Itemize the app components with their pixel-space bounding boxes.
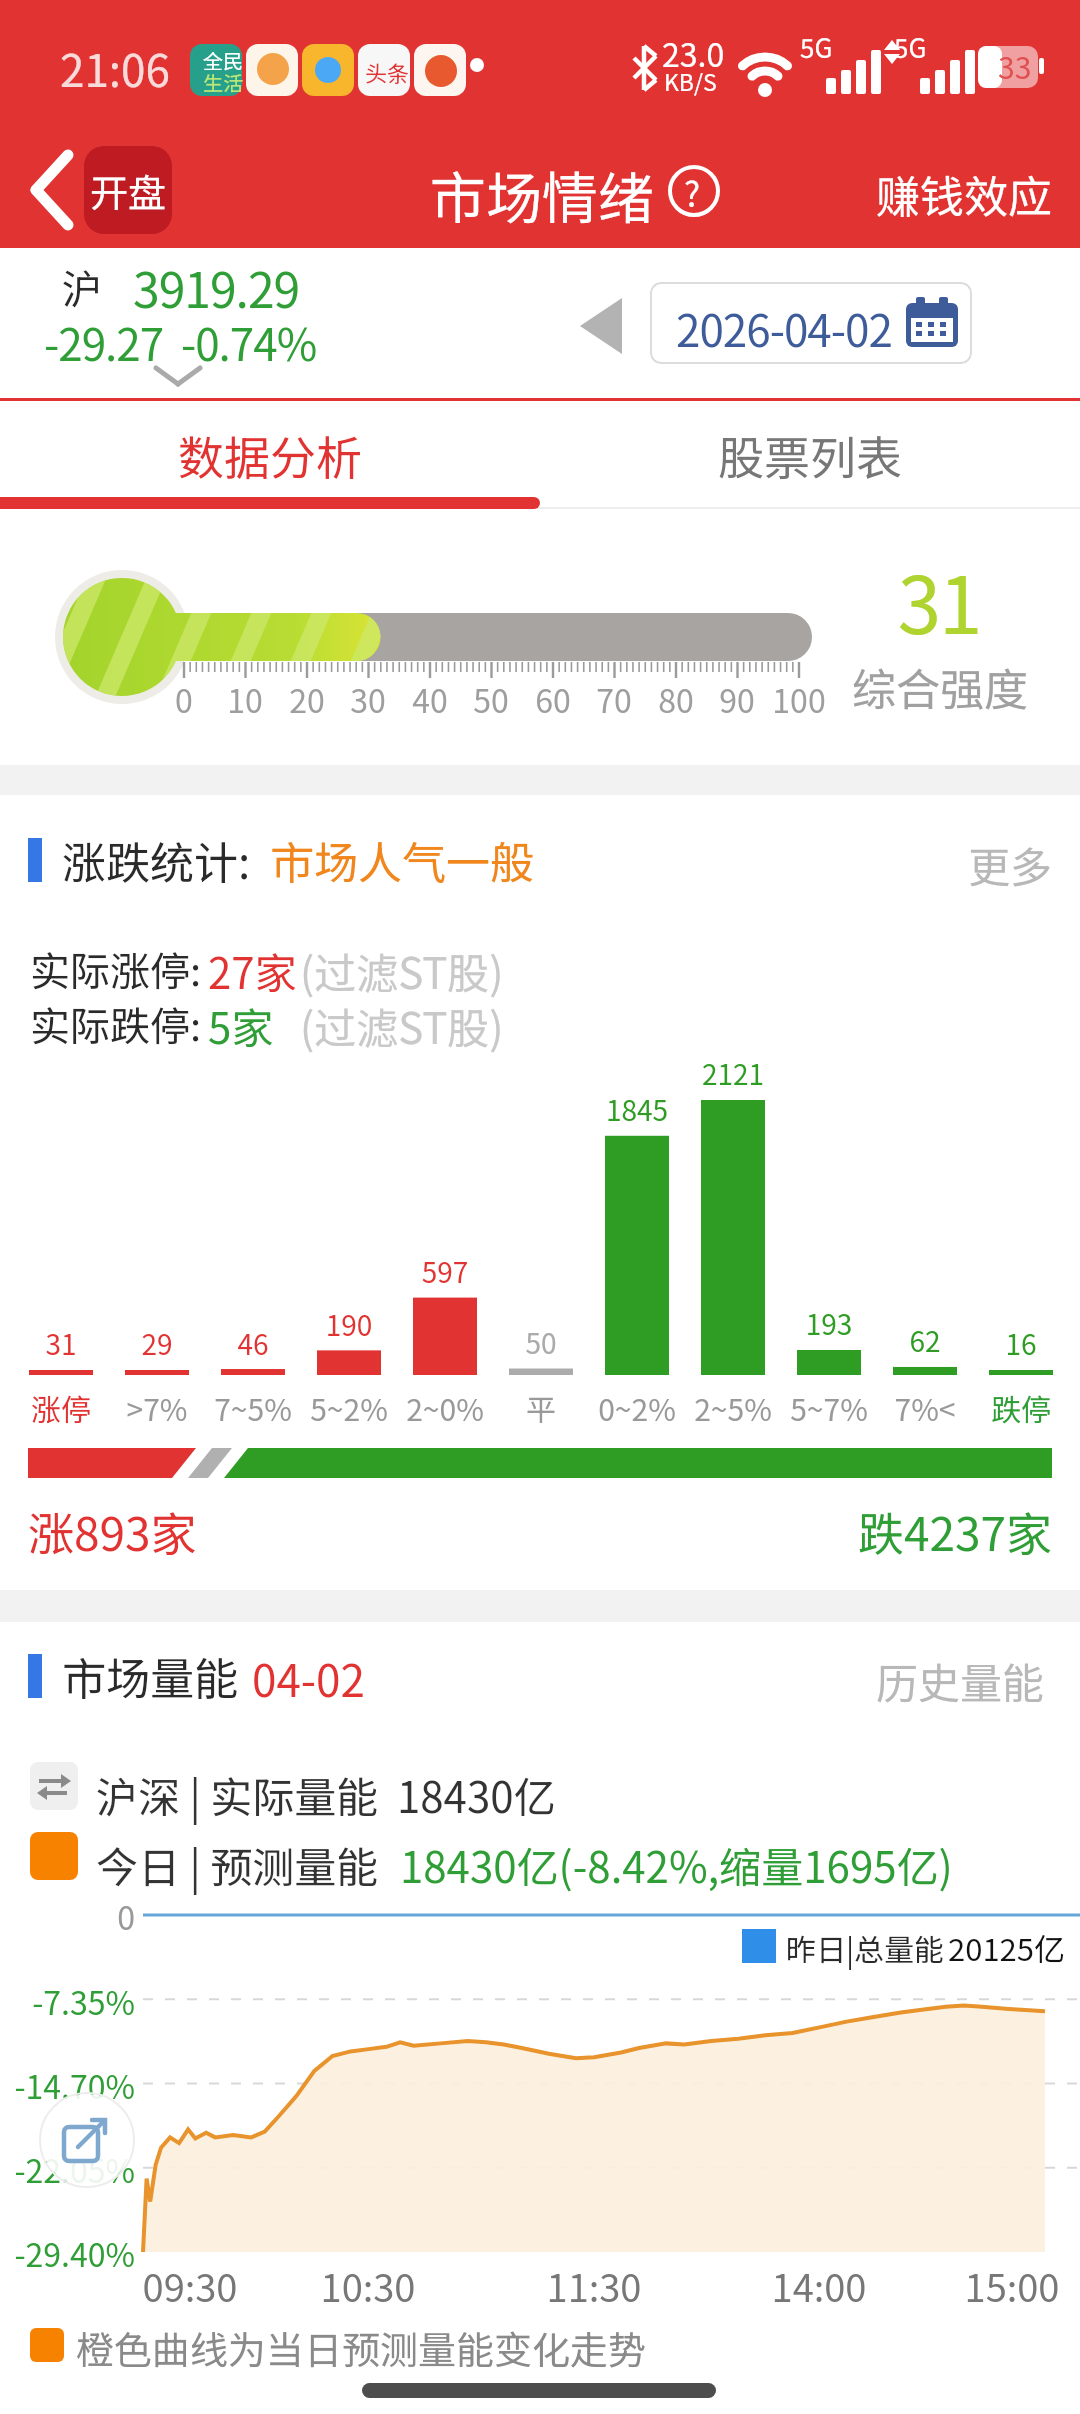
staticText: 全民	[203, 46, 243, 75]
staticText: 10	[205, 676, 285, 722]
staticText: 今日 | 预测量能	[96, 1834, 379, 1895]
staticText: 数据分析	[178, 422, 362, 489]
staticText: 50	[451, 676, 531, 722]
staticText: 18430亿(-8.42%,缩量1695亿)	[400, 1834, 953, 1895]
staticText: 46	[205, 1323, 301, 1364]
staticText: 40	[390, 676, 470, 722]
staticText: 5~7%	[769, 1386, 889, 1429]
staticText: 60	[513, 676, 593, 722]
staticText: 实际涨停:	[30, 940, 202, 998]
staticText: 5~2%	[289, 1386, 409, 1429]
staticText: 04-02	[252, 1646, 365, 1710]
staticText: (过滤ST股)	[300, 995, 504, 1056]
staticText: 涨停	[1, 1386, 121, 1429]
staticText: 30	[328, 676, 408, 722]
button[interactable]: 股票列表	[540, 401, 1080, 509]
staticText: 09:30	[130, 2258, 250, 2313]
staticText: 沪	[62, 258, 102, 316]
staticText: 21:06	[60, 36, 170, 100]
staticText: 0	[144, 676, 224, 722]
staticText: 193	[781, 1303, 877, 1344]
staticText: 实际跌停:	[30, 995, 202, 1053]
staticText: 1845	[589, 1089, 685, 1130]
staticText: 涨跌统计:	[62, 828, 251, 892]
staticText: 29	[109, 1323, 205, 1364]
staticText: 31	[884, 544, 994, 657]
staticText: 20125亿	[948, 1925, 1066, 1970]
staticText: 0~2%	[577, 1386, 697, 1429]
staticText: 50	[493, 1322, 589, 1363]
staticText: (过滤ST股)	[300, 940, 504, 1001]
staticText: -14.70%	[7, 2062, 135, 2108]
staticText: 14:00	[759, 2258, 879, 2313]
button[interactable]	[580, 298, 622, 354]
staticText: 跌4237家	[830, 1498, 1052, 1565]
staticText: 2~5%	[673, 1386, 793, 1429]
staticText: 平	[481, 1386, 601, 1429]
staticText: 27家	[208, 940, 297, 1001]
staticText: 2026-04-02	[676, 296, 892, 360]
staticText: 0	[95, 1893, 135, 1939]
button[interactable]: 2026-04-02	[650, 282, 972, 364]
staticText: 7%<	[865, 1386, 985, 1429]
staticText: 80	[636, 676, 716, 722]
staticText: 5家	[208, 995, 274, 1056]
staticText: KB/S	[664, 64, 717, 97]
staticText: 15:00	[952, 2258, 1072, 2313]
staticText: 跌停	[961, 1386, 1080, 1429]
button[interactable]	[41, 2094, 133, 2186]
staticText: 综合强度	[852, 655, 1028, 719]
staticText: 23.0	[662, 30, 725, 76]
staticText: 2121	[685, 1053, 781, 1094]
staticText: ?	[684, 168, 701, 217]
staticText: 10:30	[308, 2258, 428, 2313]
button[interactable]: 历史量能	[0, 0, 169, 61]
button[interactable]: 开盘	[84, 146, 172, 234]
staticText: 橙色曲线为当日预测量能变化走势	[76, 2320, 647, 2375]
staticText: -29.27 -0.74%	[44, 310, 317, 374]
staticText: 5G	[800, 28, 833, 66]
staticText: 市场人气一般	[270, 828, 534, 892]
staticText: 70	[574, 676, 654, 722]
staticText: -22.05%	[7, 2146, 135, 2192]
button[interactable]: 数据分析	[0, 401, 540, 509]
staticText: 33	[998, 44, 1032, 87]
staticText: >7%	[97, 1386, 217, 1429]
staticText: 20	[267, 676, 347, 722]
staticText: 5G	[894, 28, 927, 66]
staticText: 3919.29	[133, 252, 300, 322]
staticText: 90	[697, 676, 777, 722]
staticText: 597	[397, 1251, 493, 1292]
staticText: 股票列表	[718, 422, 902, 489]
staticText: -7.35%	[15, 1978, 135, 2024]
staticText: 生活	[203, 68, 243, 97]
staticText: 190	[301, 1304, 397, 1345]
button[interactable]: 赚钱效应	[0, 0, 176, 64]
staticText: 市场量能	[62, 1644, 238, 1708]
staticText: 11:30	[534, 2258, 654, 2313]
staticText: 62	[877, 1320, 973, 1361]
button[interactable]: 更多	[0, 0, 112, 61]
button[interactable]	[26, 150, 76, 230]
staticText: 市场情绪	[430, 154, 654, 235]
staticText: 涨893家	[28, 1498, 197, 1565]
staticText: 31	[13, 1323, 109, 1364]
staticText: 100	[759, 676, 839, 722]
staticText: 2~0%	[385, 1386, 505, 1429]
staticText: -29.40%	[7, 2230, 135, 2276]
staticText: 开盘	[90, 163, 167, 218]
staticText: 7~5%	[193, 1386, 313, 1429]
staticText: 头条	[365, 56, 410, 88]
staticText: 沪深 | 实际量能 18430亿	[96, 1764, 556, 1825]
staticText: 昨日|总量能	[786, 1926, 945, 1969]
staticText: 16	[973, 1323, 1069, 1364]
